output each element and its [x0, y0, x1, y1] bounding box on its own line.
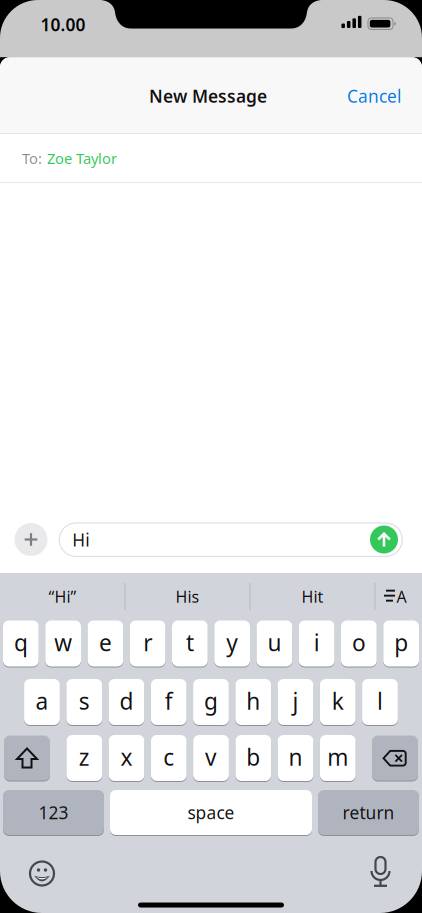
button[interactable]: i [299, 620, 335, 666]
button[interactable]: s [66, 679, 102, 725]
staticText: Zoe Taylor [47, 148, 117, 168]
staticText: A [396, 586, 406, 607]
button[interactable]: return [318, 790, 419, 835]
staticText: return [342, 801, 394, 824]
staticText: m [327, 742, 348, 772]
staticText: Hit [301, 586, 323, 607]
button[interactable]: Apps [14, 523, 47, 556]
button[interactable]: Hit [250, 578, 374, 614]
staticText: n [288, 742, 302, 772]
button[interactable]: p [383, 620, 419, 666]
staticText: Cancel [347, 84, 401, 107]
button[interactable]: t [172, 620, 208, 666]
button[interactable]: d [109, 679, 144, 725]
staticText: d [119, 686, 133, 716]
staticText: v [205, 742, 217, 772]
button[interactable]: q [3, 620, 39, 666]
staticText: s [79, 686, 90, 716]
button[interactable]: “Hi” [0, 578, 124, 614]
staticText: a [35, 686, 48, 716]
staticText: w [54, 627, 72, 657]
button[interactable]: f [151, 679, 187, 725]
button[interactable]: h [235, 679, 271, 725]
button[interactable]: Delete [372, 735, 418, 780]
button[interactable]: y [214, 620, 250, 666]
button[interactable]: a [24, 679, 60, 725]
button[interactable]: j [278, 679, 313, 725]
staticText: p [394, 627, 408, 657]
button[interactable]: Shift [4, 735, 50, 780]
button[interactable]: l [362, 679, 398, 725]
staticText: o [352, 627, 366, 657]
button[interactable]: b [235, 735, 271, 781]
button[interactable]: r [130, 620, 166, 666]
staticText: y [226, 627, 238, 657]
staticText: “Hi” [48, 586, 76, 607]
staticText: To: [22, 148, 42, 168]
button[interactable]: Emoji [20, 851, 64, 895]
button[interactable]: x [109, 735, 144, 781]
staticText: 10.00 [40, 13, 85, 36]
staticText: space [187, 801, 234, 824]
staticText: f [165, 686, 173, 716]
staticText: 123 [38, 801, 68, 824]
button[interactable]: c [151, 735, 187, 781]
button[interactable]: Cancel [327, 76, 421, 116]
staticText: e [99, 627, 112, 657]
staticText: c [163, 742, 174, 772]
staticText: g [204, 686, 218, 716]
button[interactable]: o [341, 620, 377, 666]
staticText: l [377, 686, 383, 716]
button[interactable]: u [256, 620, 292, 666]
button[interactable]: His [125, 578, 249, 614]
staticText: k [332, 686, 344, 716]
staticText: t [186, 627, 194, 657]
staticText: Hi [72, 528, 89, 551]
button[interactable]: To: [0, 134, 422, 182]
button[interactable]: w [45, 620, 81, 666]
staticText: His [175, 586, 199, 607]
button[interactable]: e [87, 620, 123, 666]
staticText: j [292, 686, 298, 716]
button[interactable]: space [110, 790, 312, 835]
button[interactable]: v [193, 735, 229, 781]
staticText: x [120, 742, 132, 772]
staticText: u [267, 627, 281, 657]
staticText: z [79, 742, 90, 772]
staticText: q [14, 627, 28, 657]
button[interactable]: m [320, 735, 356, 781]
staticText: New Message [149, 84, 267, 107]
button[interactable]: k [320, 679, 356, 725]
button[interactable]: g [193, 679, 229, 725]
staticText: b [246, 742, 260, 772]
button[interactable]: z [66, 735, 102, 781]
button[interactable]: Send [370, 525, 398, 553]
button[interactable]: Dictation [358, 851, 402, 895]
staticText: r [143, 627, 152, 657]
button[interactable]: n [278, 735, 313, 781]
staticText: h [246, 686, 260, 716]
button[interactable]: 123 [3, 790, 104, 835]
button[interactable]: Predictive text options [376, 578, 416, 614]
button[interactable]: Message text field [59, 523, 402, 556]
staticText: i [314, 627, 320, 657]
